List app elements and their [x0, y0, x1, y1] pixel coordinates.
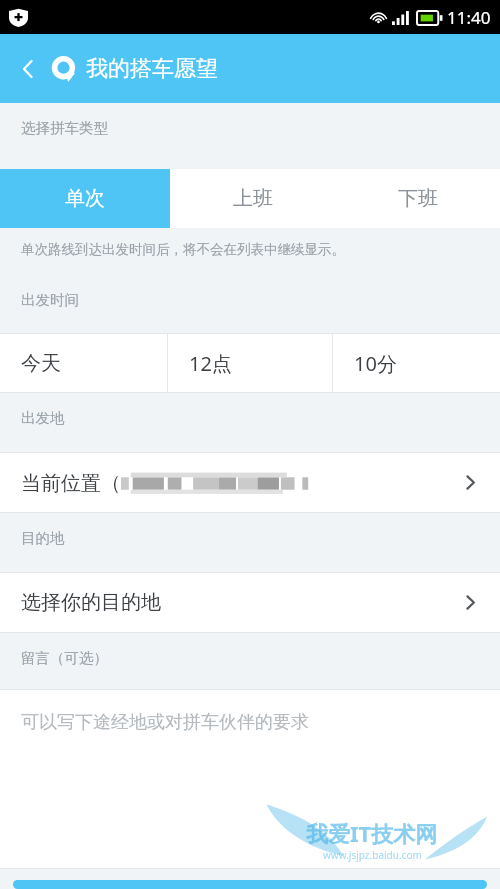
staticText: 我爱IT技术网 — [306, 818, 438, 848]
staticText: 可以写下途经地或对拼车伙伴的要求 — [21, 711, 309, 734]
staticText: www.jsjpz.baidu.com — [323, 848, 422, 862]
staticText: 出发时间 — [21, 291, 79, 309]
staticText: 单次 — [65, 186, 105, 211]
staticText: 目的地 — [21, 529, 65, 547]
button[interactable]: Submit — [13, 880, 487, 889]
staticText: 当前位置（ — [21, 471, 121, 496]
button[interactable]: Back — [6, 47, 50, 91]
button[interactable]: 单次 — [0, 169, 170, 228]
staticText: 下班 — [398, 186, 438, 211]
staticText: 单次路线到达出发时间后，将不会在列表中继续显示。 — [21, 241, 345, 258]
staticText: 选择拼车类型 — [21, 119, 108, 137]
staticText: 出发地 — [21, 409, 65, 427]
button[interactable]: 今天 — [0, 334, 167, 392]
button[interactable]: 当前位置（ — [0, 453, 500, 512]
button[interactable]: 下班 — [335, 169, 500, 228]
staticText: 选择你的目的地 — [21, 590, 161, 615]
staticText: 我的搭车愿望 — [86, 55, 218, 83]
button[interactable]: 上班 — [170, 169, 335, 228]
button[interactable]: 选择你的目的地 — [0, 573, 500, 632]
staticText: 12点 — [189, 350, 232, 377]
staticText: 10分 — [354, 350, 397, 377]
staticText: 上班 — [233, 186, 273, 211]
staticText: 11:40 — [447, 6, 491, 29]
staticText: 留言（可选） — [21, 649, 108, 667]
staticText: 今天 — [21, 351, 61, 376]
button[interactable]: 12点 — [168, 334, 332, 392]
button[interactable]: 10分 — [333, 334, 500, 392]
